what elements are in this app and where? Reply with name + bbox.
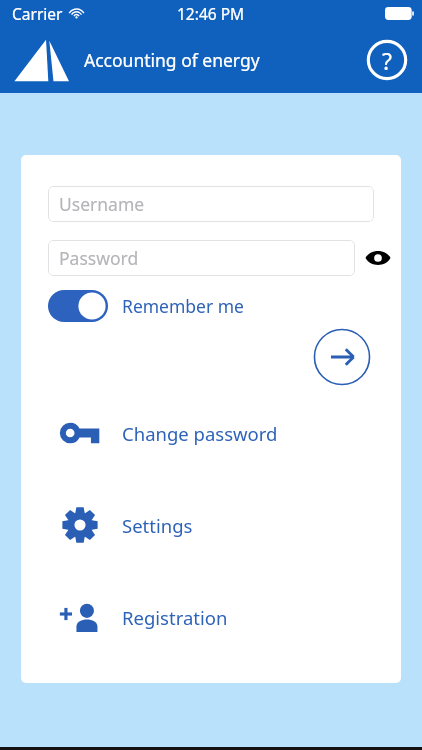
button[interactable]: Password <box>48 240 355 276</box>
staticText: Registration <box>122 605 228 630</box>
button[interactable]: Help <box>366 39 408 81</box>
button[interactable]: Username <box>48 186 374 222</box>
staticText: Settings <box>122 513 193 538</box>
staticText: Change password <box>122 421 278 446</box>
button[interactable]: Registration <box>21 596 401 638</box>
staticText: Password <box>59 246 139 270</box>
button[interactable]: Show password <box>363 243 393 273</box>
staticText: Username <box>59 192 145 216</box>
button[interactable]: Sign in <box>313 328 371 386</box>
staticText: ? <box>382 45 392 76</box>
staticText: Remember me <box>122 294 244 318</box>
button[interactable]: Settings <box>21 504 401 546</box>
button[interactable]: Change password <box>21 412 401 454</box>
staticText: Accounting of energy <box>84 48 260 72</box>
button[interactable]: Remember me <box>48 290 244 322</box>
staticText: Carrier <box>12 3 63 24</box>
staticText: 12:46 PM <box>177 3 245 24</box>
